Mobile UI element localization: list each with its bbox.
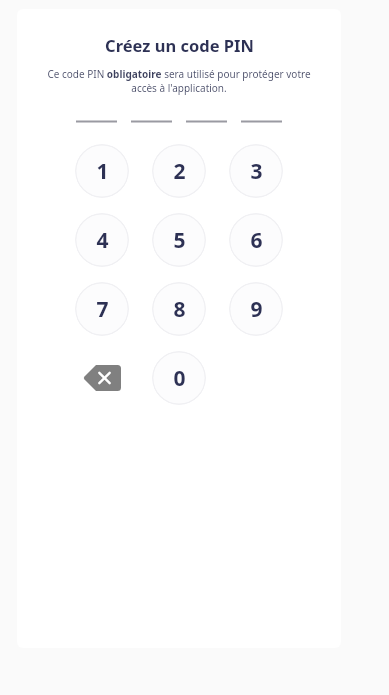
staticText: 5 xyxy=(173,226,186,255)
staticText: 6 xyxy=(250,226,263,255)
staticText: Créez un code PIN xyxy=(105,34,254,56)
button[interactable]: Effacer xyxy=(75,351,129,405)
staticText: 9 xyxy=(250,295,263,324)
staticText: 1 xyxy=(96,157,109,186)
button[interactable]: 8 xyxy=(152,282,206,336)
button[interactable]: 0 xyxy=(152,351,206,405)
staticText: 4 xyxy=(96,226,109,255)
staticText: 2 xyxy=(173,157,186,186)
staticText: 0 xyxy=(173,364,186,393)
staticText: Ce code PIN obligatoire sera utilisé pou… xyxy=(35,67,323,95)
button[interactable]: 3 xyxy=(229,144,283,198)
button[interactable]: 6 xyxy=(229,213,283,267)
staticText: 3 xyxy=(250,157,263,186)
button[interactable]: 5 xyxy=(152,213,206,267)
button[interactable]: 2 xyxy=(152,144,206,198)
button[interactable]: 7 xyxy=(75,282,129,336)
button[interactable]: 9 xyxy=(229,282,283,336)
button[interactable]: 4 xyxy=(75,213,129,267)
staticText: 7 xyxy=(96,295,109,324)
staticText: 8 xyxy=(173,295,186,324)
button[interactable]: 1 xyxy=(75,144,129,198)
